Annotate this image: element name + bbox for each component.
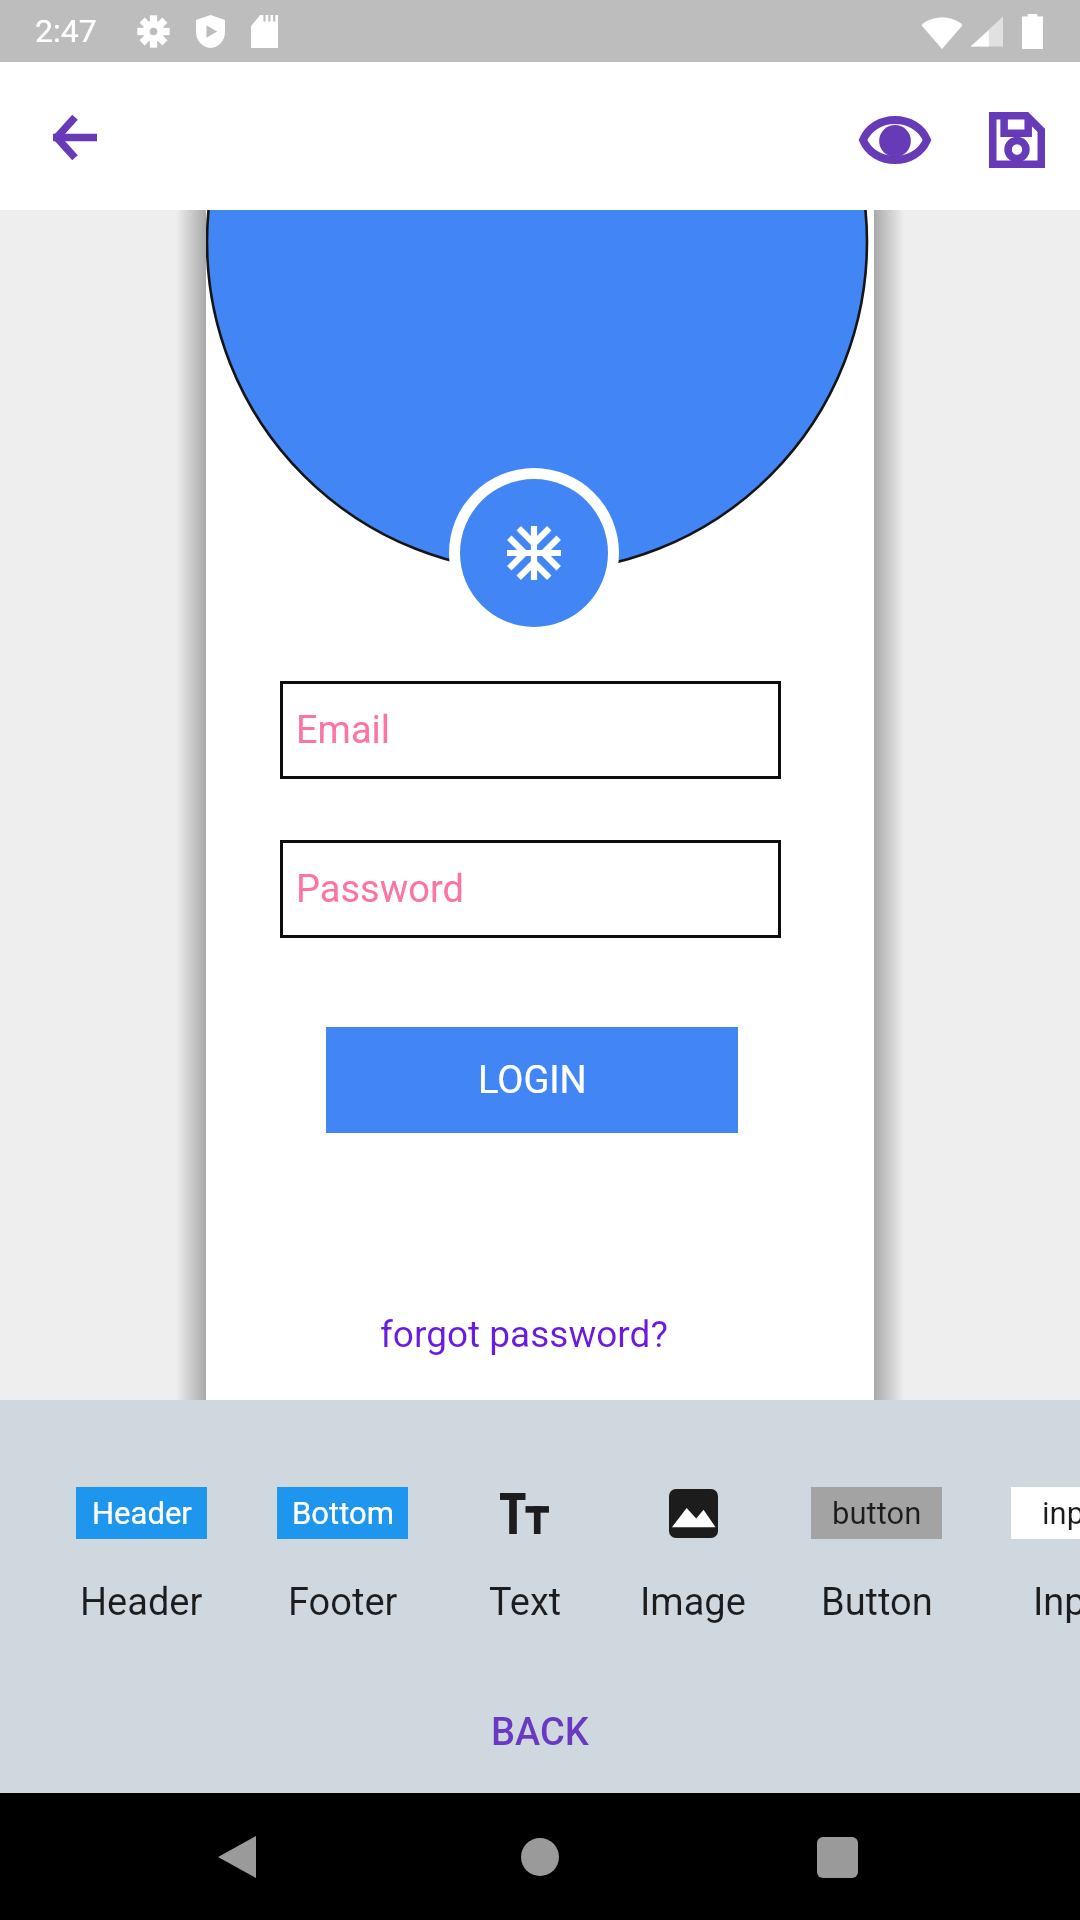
button[interactable]: Recents	[785, 1807, 885, 1907]
staticText: BACK	[491, 1710, 589, 1755]
staticText: Header	[92, 1495, 192, 1531]
staticText: Email	[296, 708, 391, 753]
button[interactable]: button	[786, 1487, 966, 1625]
staticText: 2:47	[35, 12, 97, 50]
button[interactable]: LOGIN	[326, 1027, 738, 1133]
button[interactable]: Password	[280, 840, 781, 938]
button[interactable]: Image	[603, 1487, 783, 1625]
staticText: Header	[80, 1580, 203, 1625]
staticText: Input	[1033, 1580, 1080, 1625]
staticText: Image	[640, 1580, 746, 1625]
button[interactable]: Text	[435, 1487, 615, 1625]
staticText: Footer	[288, 1580, 398, 1625]
staticText: button	[832, 1495, 922, 1531]
button[interactable]: Email	[280, 681, 781, 779]
button[interactable]: forgot password?	[380, 1313, 668, 1356]
staticText: LOGIN	[478, 1058, 587, 1103]
button[interactable]: Preview	[847, 92, 943, 188]
button[interactable]: Save	[969, 92, 1065, 188]
button[interactable]: Back	[27, 89, 123, 185]
staticText: forgot password?	[380, 1313, 668, 1356]
staticText: Button	[821, 1580, 933, 1625]
button[interactable]: Back	[195, 1807, 295, 1907]
staticText: Password	[296, 867, 464, 912]
button[interactable]: Home	[490, 1807, 590, 1907]
staticText: Bottom	[292, 1495, 394, 1531]
button[interactable]: Header	[51, 1487, 231, 1625]
button[interactable]: input	[986, 1487, 1080, 1625]
button[interactable]: Bottom	[252, 1487, 432, 1625]
staticText: Text	[489, 1580, 562, 1625]
button[interactable]: BACK	[491, 1710, 589, 1755]
staticText: input	[1042, 1495, 1080, 1531]
